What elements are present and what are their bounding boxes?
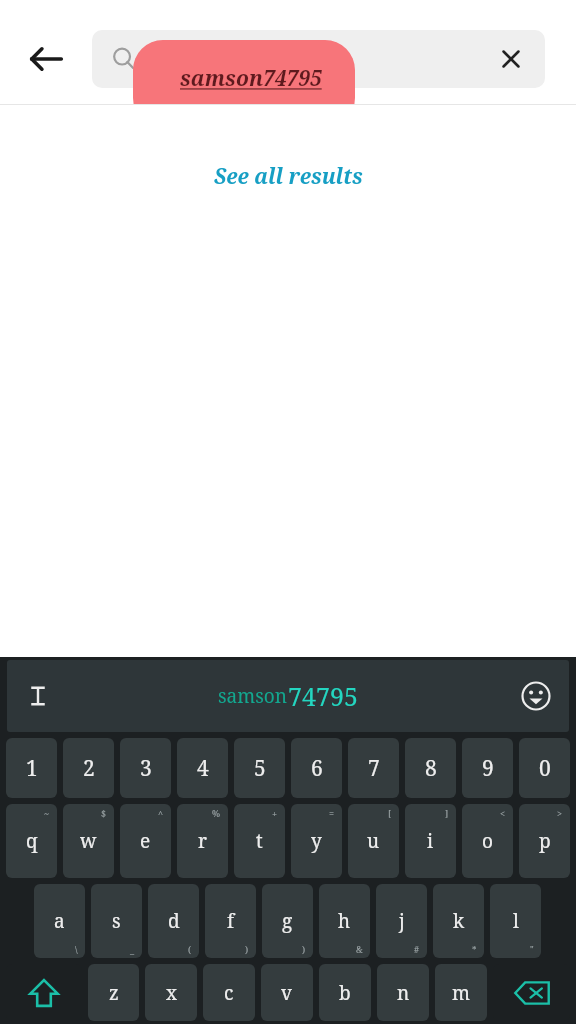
staticText: < xyxy=(500,807,506,819)
staticText: ] xyxy=(445,807,449,819)
button[interactable]: q xyxy=(6,804,57,878)
staticText: * xyxy=(472,943,477,955)
button[interactable]: 4 xyxy=(177,738,228,798)
staticText: n xyxy=(397,980,410,1006)
staticText: ( xyxy=(188,943,192,955)
staticText: f xyxy=(227,908,235,934)
button[interactable]: s xyxy=(91,884,142,958)
staticText: = xyxy=(329,807,335,819)
staticText: ^ xyxy=(158,807,164,819)
button[interactable]: b xyxy=(319,964,371,1021)
button[interactable]: m xyxy=(435,964,487,1021)
button[interactable]: a xyxy=(34,884,85,958)
staticText: b xyxy=(339,980,351,1006)
button[interactable]: 3 xyxy=(120,738,171,798)
button[interactable]: Backspace xyxy=(493,964,570,1021)
button[interactable]: 9 xyxy=(462,738,513,798)
staticText: $ xyxy=(101,807,107,819)
staticText: p xyxy=(539,828,551,854)
staticText: 9 xyxy=(482,754,494,783)
button[interactable]: 5 xyxy=(234,738,285,798)
button[interactable]: p xyxy=(519,804,570,878)
button[interactable]: 7 xyxy=(348,738,399,798)
button[interactable]: Clear search xyxy=(491,39,531,79)
button[interactable]: v xyxy=(261,964,313,1021)
staticText: > xyxy=(557,807,563,819)
button[interactable]: w xyxy=(63,804,114,878)
button[interactable]: l xyxy=(490,884,541,958)
staticText: 8 xyxy=(425,754,437,783)
staticText: \ xyxy=(75,943,78,955)
staticText: samson74795 xyxy=(180,64,322,93)
button[interactable]: Text cursor xyxy=(15,673,61,719)
button[interactable]: samson74795 xyxy=(133,40,355,128)
button[interactable]: z xyxy=(88,964,139,1021)
button[interactable]: 2 xyxy=(63,738,114,798)
staticText: y xyxy=(311,828,322,854)
button[interactable]: Clear search xyxy=(92,30,545,88)
button[interactable]: k xyxy=(433,884,484,958)
staticText: z xyxy=(109,980,119,1006)
staticText: e xyxy=(140,828,151,854)
staticText: a xyxy=(54,908,65,934)
staticText: i xyxy=(427,828,434,854)
button[interactable]: y xyxy=(291,804,342,878)
button[interactable]: j xyxy=(376,884,427,958)
staticText: [ xyxy=(388,807,392,819)
staticText: 0 xyxy=(539,754,551,783)
button[interactable]: 8 xyxy=(405,738,456,798)
staticText: 4 xyxy=(197,754,209,783)
button[interactable]: e xyxy=(120,804,171,878)
staticText: j xyxy=(399,908,405,934)
staticText: & xyxy=(356,943,363,955)
button[interactable]: r xyxy=(177,804,228,878)
staticText: 3 xyxy=(140,754,152,783)
staticText: 1 xyxy=(26,754,38,783)
button[interactable]: u xyxy=(348,804,399,878)
staticText: w xyxy=(80,828,97,854)
staticText: ) xyxy=(245,943,249,955)
button[interactable]: t xyxy=(234,804,285,878)
button[interactable]: n xyxy=(377,964,429,1021)
staticText: # xyxy=(414,943,420,955)
button[interactable]: Back xyxy=(0,24,92,94)
button[interactable]: o xyxy=(462,804,513,878)
staticText: samson xyxy=(218,683,288,709)
button[interactable]: c xyxy=(203,964,255,1021)
staticText: 74795 xyxy=(288,679,358,713)
staticText: x xyxy=(166,980,177,1006)
staticText: s xyxy=(112,908,121,934)
button[interactable]: d xyxy=(148,884,199,958)
button[interactable]: h xyxy=(319,884,370,958)
staticText: % xyxy=(212,807,221,819)
staticText: _ xyxy=(130,943,135,955)
staticText: 2 xyxy=(83,754,95,783)
button[interactable]: 6 xyxy=(291,738,342,798)
button[interactable]: i xyxy=(405,804,456,878)
button[interactable]: Emoji xyxy=(513,673,559,719)
button[interactable]: 0 xyxy=(519,738,570,798)
button[interactable]: 1 xyxy=(6,738,57,798)
staticText: d xyxy=(168,908,180,934)
staticText: ) xyxy=(302,943,306,955)
button[interactable]: x xyxy=(145,964,197,1021)
button[interactable]: g xyxy=(262,884,313,958)
staticText: ~ xyxy=(44,807,50,819)
staticText: + xyxy=(272,807,278,819)
staticText: r xyxy=(198,828,207,854)
staticText: h xyxy=(338,908,351,934)
button[interactable]: See all results xyxy=(204,158,373,195)
staticText: m xyxy=(452,980,470,1006)
staticText: g xyxy=(282,908,293,934)
button[interactable]: f xyxy=(205,884,256,958)
staticText: l xyxy=(513,908,519,934)
staticText: k xyxy=(453,908,465,934)
staticText: u xyxy=(367,828,380,854)
staticText: " xyxy=(530,943,534,955)
staticText: 7 xyxy=(368,754,380,783)
staticText: 5 xyxy=(254,754,266,783)
button[interactable]: Shift xyxy=(6,964,82,1021)
staticText: 6 xyxy=(311,754,323,783)
staticText: c xyxy=(224,980,234,1006)
staticText: v xyxy=(281,980,293,1006)
